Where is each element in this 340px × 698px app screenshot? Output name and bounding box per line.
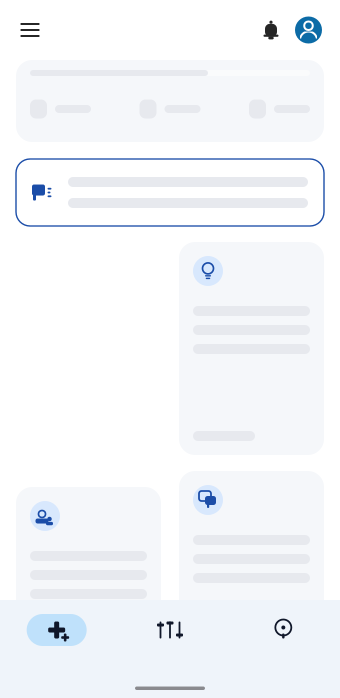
button[interactable]: Announcement — [16, 159, 324, 226]
button[interactable]: Discover — [27, 614, 87, 646]
button[interactable]: Menu — [11, 13, 49, 47]
button[interactable]: Adjust — [140, 614, 200, 646]
button[interactable]: Location — [253, 614, 313, 646]
button[interactable]: Profile — [288, 12, 329, 47]
button[interactable]: Notifications — [254, 14, 288, 45]
